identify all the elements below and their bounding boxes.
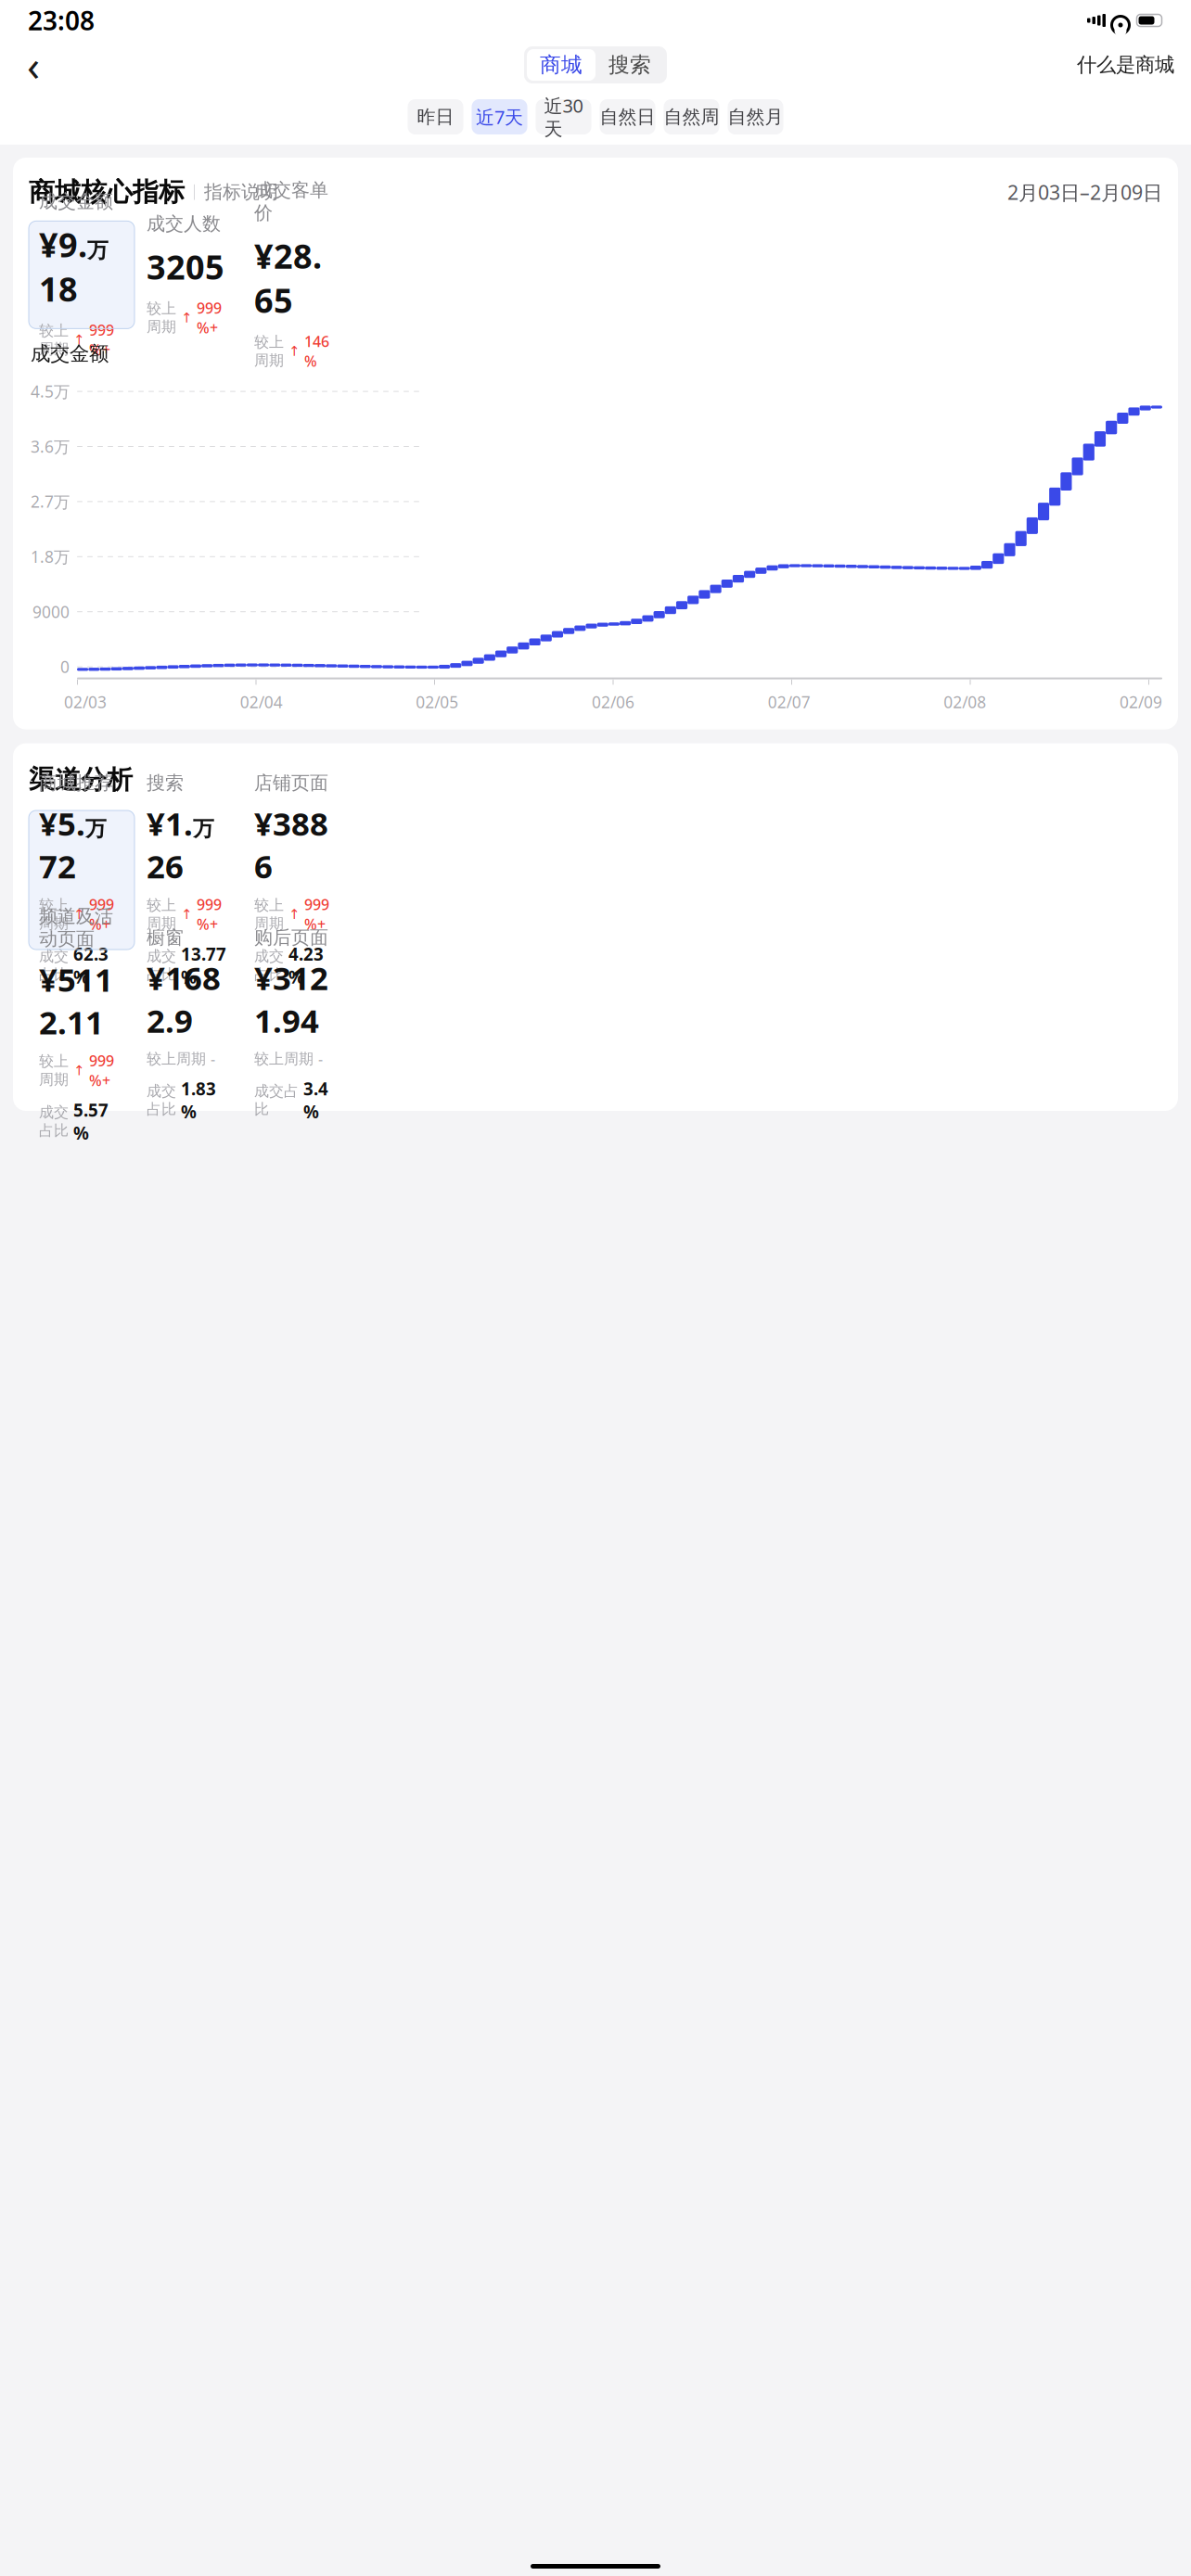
- button[interactable]: 成交人数: [136, 221, 242, 329]
- staticText: 成交占比: [254, 947, 284, 984]
- staticText: 999%+: [304, 895, 329, 934]
- staticText: 62.3%: [73, 942, 109, 988]
- staticText: 13.77%: [181, 942, 226, 988]
- button[interactable]: 商城推荐: [29, 810, 134, 950]
- staticText: 万: [193, 816, 214, 842]
- staticText: 商城: [540, 52, 583, 78]
- staticText: 较上周期: [254, 1050, 314, 1068]
- button[interactable]: 指标说明: [204, 181, 278, 204]
- staticText: ↑: [181, 907, 192, 922]
- staticText: 频道及活动页面: [39, 905, 113, 950]
- staticText: 橱窗: [147, 926, 184, 949]
- button[interactable]: Back: [13, 45, 54, 85]
- staticText: ¥3121.94: [254, 956, 328, 1042]
- staticText: 较上周期: [147, 299, 176, 336]
- button[interactable]: 购后页面: [244, 955, 350, 1094]
- staticText: 4.5万: [31, 381, 70, 402]
- staticText: 4.23%: [288, 942, 324, 988]
- staticText: ¥1.26: [147, 802, 193, 887]
- staticText: 23:08: [28, 3, 95, 38]
- staticText: 较上周期: [39, 896, 69, 933]
- staticText: ¥9.18: [39, 222, 87, 311]
- staticText: 商城核心指标: [29, 176, 185, 208]
- staticText: 搜索: [147, 772, 184, 794]
- button[interactable]: 昨日: [408, 99, 463, 134]
- staticText: 较上周期: [147, 1050, 206, 1068]
- button[interactable]: 自然日: [600, 99, 655, 134]
- staticText: 1.8万: [31, 546, 70, 567]
- staticText: 万: [87, 237, 109, 263]
- staticText: 较上周期: [254, 333, 284, 369]
- button[interactable]: 商城: [527, 49, 595, 81]
- staticText: 较上周期: [147, 896, 176, 933]
- button[interactable]: 什么是商城: [1073, 45, 1178, 85]
- staticText: 2.7万: [31, 491, 70, 512]
- staticText: ¥5112.11: [39, 958, 113, 1043]
- staticText: 999%+: [89, 895, 114, 934]
- staticText: ¥1682.9: [147, 956, 221, 1042]
- staticText: 较上周期: [254, 896, 284, 933]
- staticText: ¥5.72: [39, 802, 85, 887]
- staticText: 昨日: [417, 105, 454, 128]
- staticText: 成交占比: [147, 1082, 176, 1118]
- staticText: 146%: [304, 332, 329, 371]
- staticText: 3.6万: [31, 436, 70, 457]
- staticText: 店铺页面: [254, 772, 328, 794]
- staticText: 02/07: [768, 691, 810, 713]
- button[interactable]: 橱窗: [136, 955, 242, 1094]
- staticText: -: [318, 1049, 323, 1069]
- staticText: ↑: [73, 907, 84, 922]
- staticText: 近30天: [544, 93, 583, 140]
- staticText: 成交金额: [39, 190, 113, 213]
- staticText: 5.57%: [73, 1098, 109, 1144]
- staticText: 自然周: [664, 105, 719, 128]
- staticText: 02/04: [240, 691, 283, 713]
- staticText: 成交金额: [31, 342, 109, 366]
- staticText: 较上周期: [39, 322, 69, 358]
- staticText: ↑: [181, 310, 192, 325]
- staticText: ↑: [288, 343, 300, 359]
- staticText: ¥3886: [254, 802, 328, 887]
- staticText: 渠道分析: [29, 764, 133, 796]
- button[interactable]: 自然周: [664, 99, 719, 134]
- button[interactable]: 搜索: [595, 49, 664, 81]
- staticText: 999%+: [197, 895, 222, 934]
- staticText: 成交占比: [39, 947, 69, 984]
- staticText: 02/06: [592, 691, 634, 713]
- staticText: 自然月: [728, 105, 783, 128]
- staticText: ↑: [73, 1063, 84, 1078]
- staticText: ↑: [288, 907, 300, 922]
- button[interactable]: 近7天: [472, 99, 527, 134]
- staticText: 成交人数: [147, 212, 221, 235]
- button[interactable]: 近30天: [536, 99, 591, 134]
- staticText: 较上周期: [39, 1052, 69, 1089]
- staticText: 成交占比: [147, 947, 176, 984]
- staticText: 自然日: [600, 105, 655, 128]
- staticText: 什么是商城: [1077, 53, 1174, 77]
- staticText: 02/08: [944, 691, 986, 713]
- staticText: 3205: [147, 244, 224, 289]
- staticText: ¥28.65: [254, 234, 322, 322]
- staticText: ↑: [73, 332, 84, 348]
- staticText: 999%+: [197, 298, 222, 337]
- staticText: ‹: [27, 37, 40, 93]
- button[interactable]: 自然月: [728, 99, 783, 134]
- staticText: 3.4%: [303, 1077, 328, 1123]
- staticText: 近7天: [476, 105, 523, 129]
- staticText: 指标说明: [204, 181, 278, 204]
- staticText: 商城推荐: [39, 772, 113, 794]
- staticText: 999%+: [89, 320, 114, 360]
- staticText: 成交客单价: [254, 179, 328, 224]
- staticText: 2月03日–2月09日: [1007, 179, 1162, 205]
- staticText: 9000: [32, 601, 70, 622]
- button[interactable]: 店铺页面: [244, 810, 350, 950]
- button[interactable]: 频道及活动页面: [29, 955, 134, 1094]
- button[interactable]: 搜索: [136, 810, 242, 950]
- staticText: 0: [60, 656, 70, 677]
- staticText: 万: [85, 816, 107, 842]
- staticText: 02/05: [416, 691, 458, 713]
- staticText: 02/03: [64, 691, 107, 713]
- button[interactable]: 成交客单价: [244, 221, 350, 329]
- staticText: 1.83%: [181, 1077, 216, 1123]
- button[interactable]: 成交金额: [29, 221, 134, 329]
